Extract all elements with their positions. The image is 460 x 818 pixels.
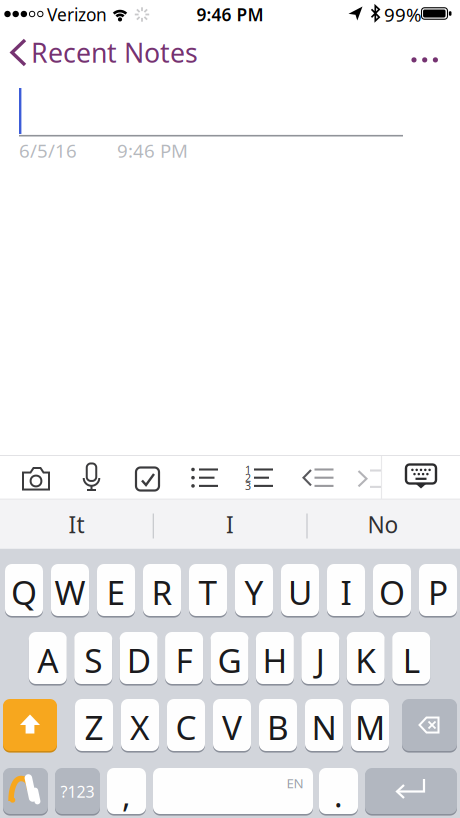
button[interactable]: , xyxy=(107,768,146,814)
button[interactable]: To Do Tag xyxy=(125,456,169,500)
button[interactable]: Swype xyxy=(3,768,48,814)
staticText: It xyxy=(68,509,84,539)
staticText: B xyxy=(267,705,289,749)
staticText: Q xyxy=(11,570,37,614)
staticText: X xyxy=(130,705,150,749)
staticText: O xyxy=(379,570,405,614)
button[interactable]: R xyxy=(143,564,181,616)
button[interactable]: Back to Recent Notes xyxy=(8,38,211,67)
staticText: Recent Notes xyxy=(31,35,198,70)
button[interactable]: I xyxy=(155,501,305,547)
button[interactable]: O xyxy=(373,564,411,616)
button[interactable]: U xyxy=(281,564,319,616)
staticText: M xyxy=(355,705,385,749)
staticText: 6/5/16 xyxy=(19,138,77,163)
button[interactable]: N xyxy=(305,699,343,751)
button[interactable]: Y xyxy=(235,564,273,616)
button[interactable]: It xyxy=(1,501,151,547)
button[interactable]: K xyxy=(347,632,385,684)
staticText: J xyxy=(316,638,325,682)
staticText: 3 xyxy=(245,479,251,493)
staticText: 2 xyxy=(245,471,251,485)
staticText: 1 xyxy=(245,462,251,477)
button[interactable]: E xyxy=(97,564,135,616)
button[interactable]: Dismiss Keyboard xyxy=(399,456,443,500)
button[interactable]: Decrease Indent xyxy=(296,456,340,500)
staticText: D xyxy=(127,638,151,682)
staticText: V xyxy=(222,705,242,749)
button[interactable]: Numbers xyxy=(55,768,100,814)
staticText: L xyxy=(403,638,420,682)
button[interactable]: No xyxy=(308,501,458,547)
button[interactable]: Record Audio xyxy=(69,456,113,500)
button[interactable]: A xyxy=(29,632,67,684)
staticText: E xyxy=(106,570,125,614)
button[interactable]: H xyxy=(256,632,294,684)
button[interactable]: Delete xyxy=(402,699,457,751)
staticText: U xyxy=(288,570,312,614)
button[interactable]: B xyxy=(259,699,297,751)
staticText: No xyxy=(367,509,398,539)
staticText: A xyxy=(37,638,58,682)
staticText: I xyxy=(340,570,351,614)
staticText: F xyxy=(176,638,193,682)
button[interactable]: Increase Indent xyxy=(346,456,384,500)
staticText: N xyxy=(311,705,336,749)
staticText: ?123 xyxy=(60,781,94,802)
staticText: Y xyxy=(244,570,263,614)
staticText: C xyxy=(175,705,196,749)
button[interactable]: L xyxy=(392,632,430,684)
button[interactable]: F xyxy=(165,632,203,684)
staticText: I xyxy=(226,509,234,539)
button[interactable]: Numbered List xyxy=(237,456,281,500)
button[interactable]: D xyxy=(120,632,158,684)
staticText: H xyxy=(262,638,287,682)
button[interactable]: G xyxy=(210,632,248,684)
staticText: P xyxy=(428,570,448,614)
button[interactable]: Space xyxy=(153,768,313,814)
staticText: , xyxy=(122,774,131,816)
button[interactable]: C xyxy=(167,699,205,751)
staticText: Z xyxy=(84,705,103,749)
button[interactable]: . xyxy=(319,768,358,814)
button[interactable]: M xyxy=(351,699,389,751)
button[interactable]: T xyxy=(189,564,227,616)
staticText: 9:46 PM xyxy=(196,3,263,26)
staticText: G xyxy=(217,638,241,682)
staticText: . xyxy=(334,774,343,816)
staticText: R xyxy=(151,570,172,614)
staticText: W xyxy=(54,570,85,614)
staticText: Verizon xyxy=(47,3,107,26)
button[interactable]: V xyxy=(213,699,251,751)
button[interactable]: P xyxy=(419,564,457,616)
staticText: S xyxy=(84,638,102,682)
button[interactable]: Shift xyxy=(3,699,57,751)
button[interactable]: Return xyxy=(365,768,457,814)
staticText: EN xyxy=(286,774,303,792)
button[interactable]: S xyxy=(74,632,112,684)
button[interactable]: Camera xyxy=(14,456,58,500)
staticText: 99% xyxy=(384,2,422,27)
staticText: 9:46 PM xyxy=(117,138,188,163)
button[interactable]: Bulleted List xyxy=(181,456,225,500)
button[interactable]: Q xyxy=(5,564,43,616)
button[interactable]: X xyxy=(121,699,159,751)
button[interactable]: Z xyxy=(75,699,113,751)
staticText: K xyxy=(355,638,376,682)
button[interactable]: I xyxy=(327,564,365,616)
button[interactable]: More xyxy=(407,45,443,75)
staticText: T xyxy=(198,570,217,614)
button[interactable]: J xyxy=(301,632,339,684)
button[interactable]: W xyxy=(51,564,89,616)
